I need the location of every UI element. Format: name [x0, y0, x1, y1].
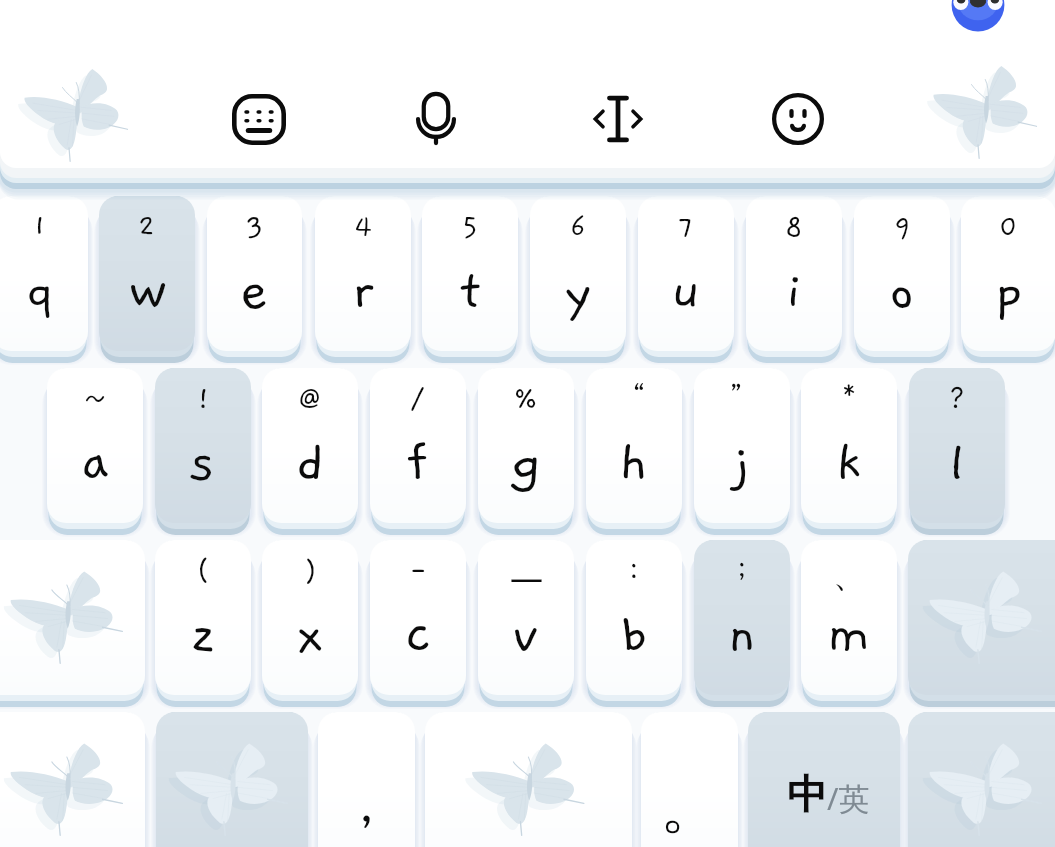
button[interactable]: ~ [47, 368, 143, 535]
staticText: g [511, 433, 542, 493]
staticText: 、 [833, 555, 866, 597]
staticText: ? [948, 383, 966, 416]
staticText: 中 [787, 769, 827, 819]
button[interactable]: Emoji [748, 69, 848, 169]
staticText: 1 [33, 211, 47, 244]
button[interactable]: , [318, 712, 415, 847]
staticText: h [619, 433, 649, 493]
staticText: k [836, 433, 862, 493]
staticText: f [407, 433, 429, 493]
button[interactable]: : [586, 540, 682, 707]
button[interactable]: 、 [801, 540, 897, 707]
staticText: r [352, 261, 375, 321]
button[interactable]: “ [586, 368, 682, 535]
staticText: ~ [82, 383, 109, 416]
button[interactable]: 6 [530, 196, 626, 363]
staticText: b [620, 605, 648, 665]
button[interactable]: ? [909, 368, 1005, 535]
staticText: 8 [785, 211, 803, 244]
staticText: : [628, 555, 640, 588]
button[interactable]: Settings [156, 712, 308, 847]
staticText: a [81, 433, 109, 493]
staticText: e [240, 261, 269, 321]
staticText: o [889, 261, 915, 321]
staticText: - [408, 555, 429, 588]
staticText: i [786, 261, 803, 321]
staticText: 2 [138, 211, 156, 244]
button[interactable]: / [370, 368, 466, 535]
button[interactable]: 0 [961, 196, 1055, 363]
button[interactable]: 4 [315, 196, 411, 363]
button[interactable]: Backspace [908, 540, 1055, 707]
button[interactable]: ( [155, 540, 251, 707]
button[interactable]: 2 [99, 196, 195, 363]
staticText: w [128, 261, 167, 321]
staticText: d [296, 433, 325, 493]
button[interactable]: ) [262, 540, 358, 707]
button[interactable]: Keyboard layout [208, 70, 310, 169]
button[interactable]: @ [262, 368, 358, 535]
button[interactable]: — [478, 540, 574, 707]
staticText: q [26, 261, 55, 321]
button[interactable]: * [801, 368, 897, 535]
button[interactable]: Shift [0, 540, 145, 707]
staticText: c [405, 605, 431, 665]
button[interactable]: 。 [641, 712, 738, 847]
button[interactable]: 9 [854, 196, 950, 363]
staticText: ” [728, 383, 756, 416]
button[interactable]: % [478, 368, 574, 535]
staticText: t [460, 261, 481, 321]
staticText: ! [196, 383, 211, 416]
button[interactable]: Enter [908, 712, 1055, 847]
staticText: /英 [827, 777, 870, 819]
button[interactable]: Move cursor [569, 72, 667, 166]
staticText: m [827, 605, 871, 665]
staticText: n [728, 605, 757, 665]
staticText: y [564, 261, 593, 321]
button[interactable]: 中 [748, 712, 900, 847]
staticText: p [995, 261, 1023, 321]
staticText: 5 [462, 211, 479, 244]
staticText: 4 [354, 211, 373, 244]
button[interactable]: 8 [746, 196, 842, 363]
staticText: l [949, 433, 966, 493]
staticText: u [671, 261, 701, 321]
staticText: ; [736, 555, 748, 588]
button[interactable]: Symbols [0, 712, 145, 847]
staticText: , [356, 777, 377, 837]
button[interactable]: ” [694, 368, 790, 535]
staticText: s [191, 433, 215, 493]
button[interactable]: 5 [422, 196, 518, 363]
staticText: “ [620, 383, 648, 416]
button[interactable]: 7 [638, 196, 734, 363]
button[interactable]: Space [425, 712, 632, 847]
staticText: 6 [570, 211, 586, 244]
button[interactable]: Voice input [392, 70, 480, 167]
staticText: 9 [894, 211, 911, 244]
button[interactable]: 1 [0, 196, 88, 363]
staticText: v [512, 605, 540, 665]
staticText: % [513, 383, 539, 416]
staticText: ) [303, 555, 318, 588]
button[interactable]: ! [155, 368, 251, 535]
staticText: @ [297, 383, 323, 416]
staticText: ( [196, 555, 211, 588]
staticText: 3 [246, 211, 264, 244]
staticText: x [296, 605, 325, 665]
staticText: z [191, 605, 215, 665]
button[interactable]: - [370, 540, 466, 707]
staticText: — [510, 555, 543, 600]
staticText: 。 [660, 769, 720, 845]
button[interactable]: 3 [207, 196, 302, 363]
staticText: 7 [678, 211, 694, 244]
staticText: * [840, 383, 859, 416]
button[interactable]: ; [694, 540, 790, 707]
staticText: / [410, 383, 426, 416]
staticText: 0 [999, 211, 1018, 244]
staticText: j [734, 433, 751, 493]
